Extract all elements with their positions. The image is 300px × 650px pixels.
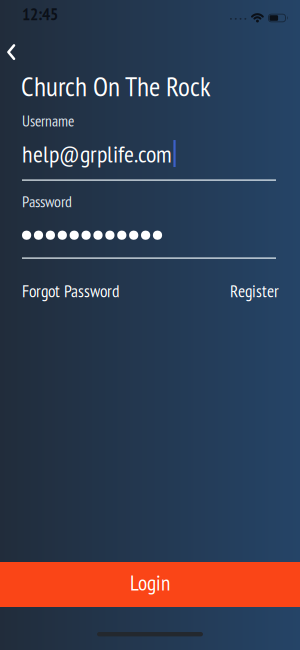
- staticText: help@grplife.com: [22, 138, 172, 169]
- staticText: Username: [22, 111, 74, 131]
- button[interactable]: Back: [0, 39, 15, 65]
- staticText: 12:45: [22, 2, 58, 25]
- button[interactable]: Forgot Password: [22, 279, 120, 302]
- staticText: Password: [22, 191, 72, 212]
- staticText: Forgot Password: [22, 279, 120, 302]
- button[interactable]: Login: [0, 562, 300, 607]
- staticText: Register: [230, 279, 279, 302]
- staticText: Church On The Rock: [21, 68, 211, 104]
- button[interactable]: Register: [230, 279, 279, 302]
- staticText: Login: [130, 569, 170, 596]
